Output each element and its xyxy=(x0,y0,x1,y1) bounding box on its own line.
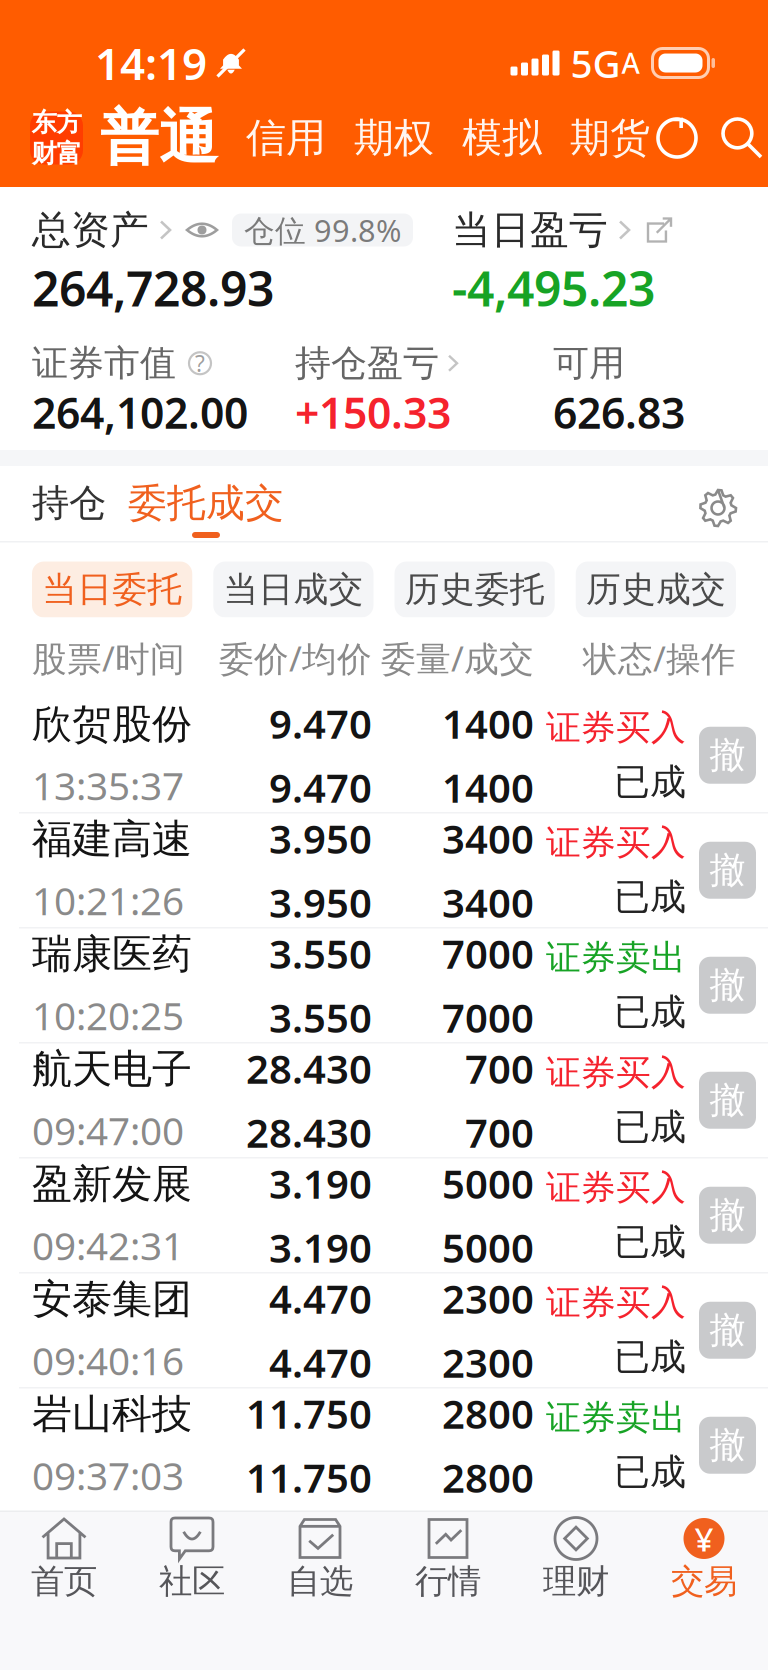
button[interactable]: 盈新发展 xyxy=(0,1158,768,1272)
staticText: 总资产 xyxy=(32,206,149,254)
staticText: 期货 xyxy=(570,113,650,162)
button[interactable]: ¥ xyxy=(640,1506,768,1607)
staticText: 证券卖出 xyxy=(546,936,686,979)
staticText: 福建高速 xyxy=(32,814,192,864)
button[interactable]: 撤单 xyxy=(699,957,756,1014)
staticText: 委托成交 xyxy=(128,479,284,527)
button[interactable]: 搜索 xyxy=(714,110,768,166)
button[interactable]: 欣贺股份 xyxy=(0,698,768,812)
staticText: 11.750 xyxy=(246,1451,372,1504)
button[interactable]: 岩山科技 xyxy=(0,1388,768,1502)
staticText: A xyxy=(621,44,639,82)
staticText: 1400 xyxy=(442,697,534,750)
button[interactable]: 信用 xyxy=(246,113,326,162)
staticText: 状态/操作 xyxy=(583,635,736,681)
staticText: 3400 xyxy=(442,876,534,929)
button[interactable]: 自选 xyxy=(256,1506,384,1607)
staticText: 3.950 xyxy=(269,876,372,929)
staticText: 28.430 xyxy=(246,1042,372,1095)
staticText: 当日成交 xyxy=(223,568,363,611)
button[interactable]: 历史成交 xyxy=(576,561,736,617)
staticText: 期权 xyxy=(354,113,434,162)
staticText: 委价/均价 xyxy=(219,635,372,681)
staticText: 行情 xyxy=(415,1561,481,1602)
staticText: 09:42:31 xyxy=(32,1220,184,1271)
staticText: 264,728.93 xyxy=(32,256,274,320)
button[interactable]: 设置 xyxy=(694,484,742,532)
staticText: 持仓盈亏 xyxy=(295,341,439,385)
staticText: ? xyxy=(195,348,205,378)
staticText: 航天电子 xyxy=(32,1044,192,1094)
button[interactable]: 委托成交 xyxy=(128,482,284,524)
button[interactable]: 撤单 xyxy=(699,1417,756,1474)
staticText: 撤 xyxy=(709,1193,745,1237)
staticText: 股票/时间 xyxy=(32,635,185,681)
staticText: 700 xyxy=(465,1042,534,1095)
button[interactable]: 撤单 xyxy=(699,842,756,899)
staticText: 首页 xyxy=(31,1561,97,1602)
staticText: 5000 xyxy=(442,1221,534,1274)
button[interactable]: 当日成交 xyxy=(213,561,373,617)
staticText: 09:40:16 xyxy=(32,1335,184,1386)
staticText: +150.33 xyxy=(295,384,451,440)
staticText: 已成 xyxy=(614,1450,686,1494)
staticText: 28.430 xyxy=(246,1106,372,1159)
button[interactable]: 持仓 xyxy=(32,482,106,524)
staticText: 瑞康医药 xyxy=(32,929,192,979)
staticText: 社区 xyxy=(159,1561,225,1602)
button[interactable]: 撤单 xyxy=(699,1187,756,1244)
staticText: 安泰集团 xyxy=(32,1274,192,1324)
staticText: 撤 xyxy=(709,1078,745,1122)
button[interactable]: 首页 xyxy=(0,1506,128,1607)
button[interactable]: 航天电子 xyxy=(0,1043,768,1157)
button[interactable]: 瑞康医药 xyxy=(0,928,768,1042)
button[interactable]: 模拟 xyxy=(462,113,542,162)
staticText: 已成 xyxy=(614,760,686,804)
staticText: 09:37:03 xyxy=(32,1450,184,1501)
staticText: 已成 xyxy=(614,1220,686,1264)
staticText: 3.190 xyxy=(269,1221,372,1274)
button[interactable]: 当日委托 xyxy=(32,561,192,617)
staticText: 证券买入 xyxy=(546,1051,686,1094)
button[interactable]: 社区 xyxy=(128,1506,256,1607)
staticText: 东方 xyxy=(31,107,81,138)
staticText: 历史成交 xyxy=(586,568,726,611)
button[interactable]: 撤单 xyxy=(699,1072,756,1129)
staticText: 交易 xyxy=(671,1561,737,1602)
button[interactable]: 期权 xyxy=(354,113,434,162)
button[interactable]: 期货 xyxy=(570,113,650,162)
staticText: 证券市值 xyxy=(32,341,176,385)
staticText: 自选 xyxy=(287,1561,353,1602)
staticText: 9.470 xyxy=(269,761,372,814)
staticText: 4.470 xyxy=(269,1336,372,1389)
button[interactable]: 行情 xyxy=(384,1506,512,1607)
staticText: 已成 xyxy=(614,1335,686,1379)
button[interactable]: 福建高速 xyxy=(0,813,768,927)
staticText: 持仓 xyxy=(32,480,106,526)
staticText: 9.470 xyxy=(269,697,372,750)
staticText: 证券买入 xyxy=(546,1166,686,1209)
staticText: 证券买入 xyxy=(546,1281,686,1324)
staticText: 2300 xyxy=(442,1336,534,1389)
staticText: 岩山科技 xyxy=(32,1389,192,1439)
button[interactable]: 撤单 xyxy=(699,727,756,784)
staticText: 3.550 xyxy=(269,991,372,1044)
staticText: 撤 xyxy=(709,848,745,892)
button[interactable]: 撤单 xyxy=(699,1302,756,1359)
staticText: 11.750 xyxy=(246,1387,372,1440)
button[interactable]: 理财 xyxy=(512,1506,640,1607)
button[interactable]: 刷新 xyxy=(650,111,704,165)
staticText: -4,495.23 xyxy=(452,256,655,320)
button[interactable]: 安泰集团 xyxy=(0,1273,768,1387)
staticText: 1400 xyxy=(442,761,534,814)
button[interactable]: 历史委托 xyxy=(394,561,555,617)
staticText: 2800 xyxy=(442,1387,534,1440)
staticText: 证券买入 xyxy=(546,706,686,749)
staticText: 仓位 99.8% xyxy=(244,210,401,250)
staticText: 历史委托 xyxy=(405,568,545,611)
staticText: 已成 xyxy=(614,990,686,1034)
staticText: 委量/成交 xyxy=(381,635,534,681)
staticText: 证券买入 xyxy=(546,821,686,864)
staticText: 证券卖出 xyxy=(546,1396,686,1439)
staticText: 10:20:25 xyxy=(32,990,184,1041)
